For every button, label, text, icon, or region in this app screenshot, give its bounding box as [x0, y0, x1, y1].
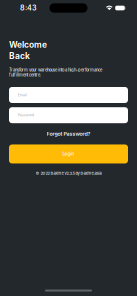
staticText: 8:43	[20, 4, 37, 12]
staticText: Back	[9, 51, 30, 61]
staticText: Transform your warehouse into a high-per…	[9, 67, 102, 77]
staticText: Forgot Password?	[46, 131, 90, 137]
staticText: Welcome	[9, 39, 47, 50]
button[interactable]: Email	[9, 87, 128, 103]
button[interactable]: Password	[9, 107, 128, 123]
button[interactable]: Forgot Password?	[46, 131, 90, 137]
staticText: Password	[18, 113, 34, 117]
staticText: Email	[18, 93, 27, 97]
staticText: Login	[62, 151, 74, 156]
staticText: © 2022 Baxme v2.3.5 by baxme.asia	[35, 171, 101, 176]
button[interactable]: Login	[9, 144, 128, 163]
